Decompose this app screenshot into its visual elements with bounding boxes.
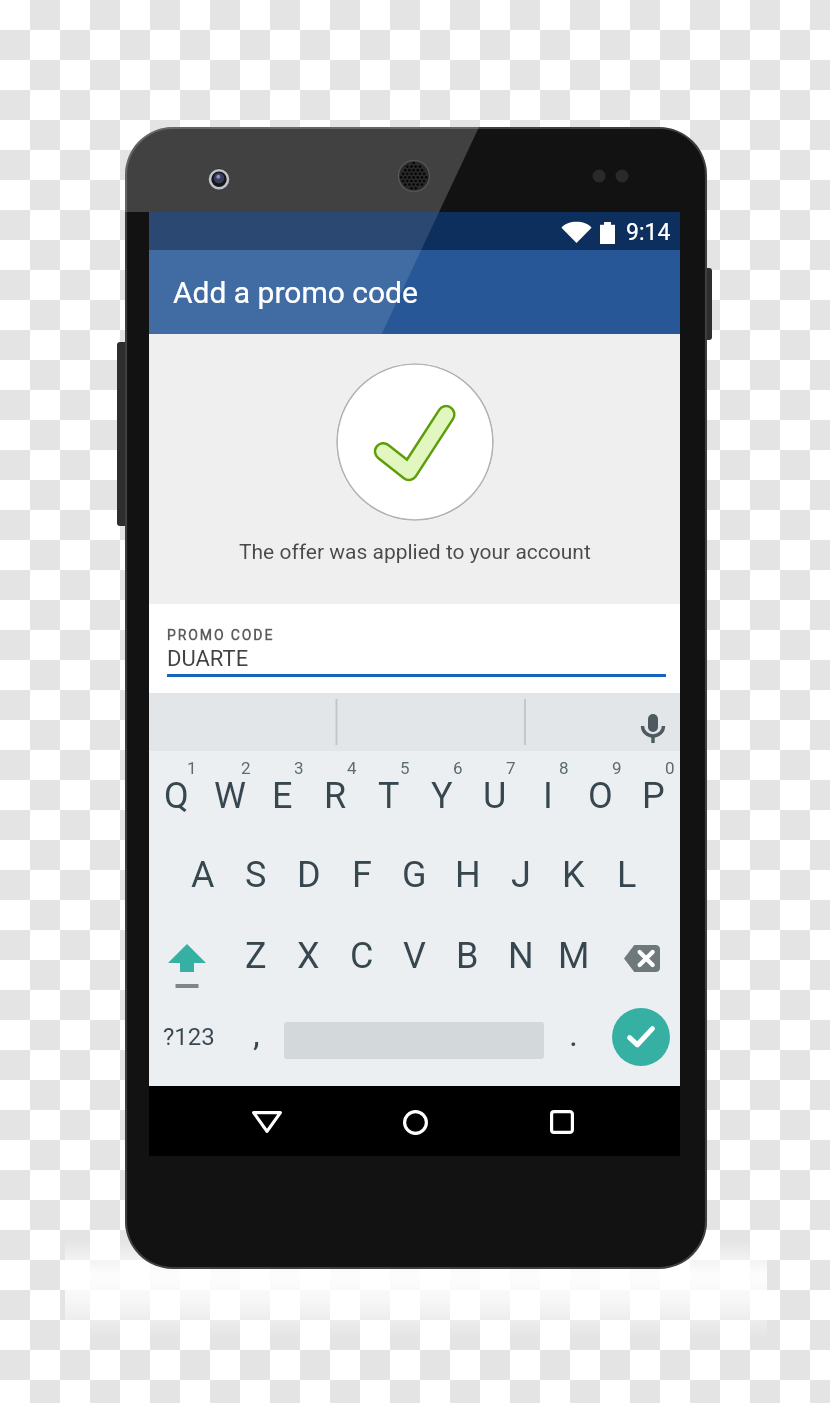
button[interactable]: ,	[228, 996, 284, 1081]
staticText: 1	[187, 758, 197, 778]
button[interactable]: Space	[284, 996, 544, 1081]
button[interactable]: PROMO CODE	[149, 604, 680, 693]
staticText: F	[352, 854, 372, 896]
button[interactable]: H	[441, 834, 494, 915]
button[interactable]: .	[544, 996, 602, 1081]
staticText: 2	[241, 758, 251, 778]
staticText: Q	[164, 775, 189, 817]
staticText: ?123	[163, 1023, 215, 1051]
button[interactable]: K	[547, 834, 600, 915]
staticText: M	[558, 935, 590, 977]
staticText: O	[588, 775, 613, 817]
button[interactable]: S	[229, 834, 282, 915]
button[interactable]: L	[600, 834, 653, 915]
staticText: I	[543, 775, 553, 817]
staticText: 8	[559, 758, 569, 778]
staticText: D	[297, 854, 321, 896]
staticText: 5	[400, 758, 410, 778]
button[interactable]: Enter	[602, 996, 680, 1081]
staticText: 6	[453, 758, 463, 778]
staticText: L	[617, 854, 637, 896]
staticText: N	[508, 935, 534, 977]
button[interactable]: D	[282, 834, 335, 915]
staticText: U	[483, 775, 507, 817]
button[interactable]: 0	[627, 751, 680, 834]
staticText: E	[272, 775, 293, 817]
button[interactable]: M	[547, 915, 600, 996]
staticText: G	[402, 854, 427, 896]
staticText: .	[569, 1014, 578, 1054]
button[interactable]: Z	[229, 915, 282, 996]
staticText: Add a promo code	[173, 275, 418, 310]
staticText: Z	[245, 935, 267, 977]
button[interactable]: Home	[375, 1086, 455, 1156]
staticText: B	[456, 935, 479, 977]
staticText: H	[455, 854, 481, 896]
button[interactable]: 2	[203, 751, 256, 834]
staticText: W	[214, 775, 246, 817]
button[interactable]: Voice input	[614, 693, 680, 751]
button[interactable]: F	[335, 834, 388, 915]
staticText: 3	[294, 758, 304, 778]
button[interactable]: C	[335, 915, 388, 996]
button[interactable]: ?123	[149, 996, 228, 1081]
button[interactable]: 5	[362, 751, 415, 834]
staticText: Y	[431, 775, 453, 817]
button[interactable]: J	[494, 834, 547, 915]
staticText: A	[191, 854, 215, 896]
staticText: R	[324, 775, 347, 817]
button[interactable]: Recents	[522, 1086, 602, 1156]
staticText: The offer was applied to your account	[239, 540, 591, 565]
staticText: T	[378, 775, 400, 817]
button[interactable]: Backspace	[600, 915, 680, 996]
button[interactable]: 3	[256, 751, 309, 834]
staticText: K	[562, 854, 585, 896]
button[interactable]: G	[388, 834, 441, 915]
staticText: J	[511, 854, 531, 896]
staticText: V	[403, 935, 426, 977]
staticText: ,	[253, 1014, 260, 1054]
button[interactable]: 1	[149, 751, 203, 834]
staticText: 9:14	[626, 219, 671, 246]
staticText: 4	[347, 758, 357, 778]
staticText: C	[350, 935, 374, 977]
button[interactable]: Shift	[149, 915, 229, 996]
staticText: 7	[506, 758, 516, 778]
staticText: X	[297, 935, 320, 977]
button[interactable]: 4	[309, 751, 362, 834]
staticText: S	[245, 854, 267, 896]
staticText: 9	[612, 758, 622, 778]
button[interactable]: 8	[521, 751, 574, 834]
staticText: DUARTE	[167, 646, 249, 672]
button[interactable]: A	[176, 834, 229, 915]
staticText: 0	[665, 758, 675, 778]
button[interactable]: 7	[468, 751, 521, 834]
button[interactable]: N	[494, 915, 547, 996]
button[interactable]: Back	[227, 1086, 307, 1156]
staticText: PROMO CODE	[167, 627, 275, 643]
button[interactable]: X	[282, 915, 335, 996]
button[interactable]: B	[441, 915, 494, 996]
button[interactable]: V	[388, 915, 441, 996]
button[interactable]: 6	[415, 751, 468, 834]
staticText: P	[642, 775, 665, 817]
button[interactable]: 9	[574, 751, 627, 834]
